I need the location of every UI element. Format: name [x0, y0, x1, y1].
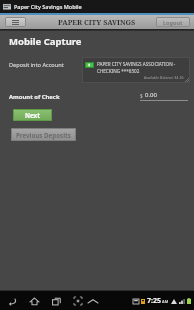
button[interactable]: PAPER CITY SAVINGS ASSOCIATION -	[82, 57, 190, 83]
button[interactable]: Next	[13, 109, 52, 121]
staticText: CHECKING ***6502	[97, 68, 140, 74]
staticText: Deposit into Account	[9, 61, 64, 69]
staticText: PAPER CITY SAVINGS	[58, 17, 136, 27]
staticText: 7:25	[147, 296, 161, 306]
button[interactable]: Previous Deposits	[11, 128, 76, 141]
staticText: Paper City Savings Mobile	[14, 3, 82, 10]
button[interactable]: Notifications	[88, 299, 98, 304]
staticText: AM	[162, 299, 169, 304]
staticText: Mobile Capture	[9, 35, 82, 48]
staticText: Amount of Check	[9, 93, 60, 101]
staticText: Previous Deposits	[16, 131, 71, 139]
staticText: Logout	[163, 19, 183, 26]
staticText: $	[140, 93, 143, 99]
button[interactable]: Logout	[156, 17, 190, 27]
button[interactable]: Recent apps	[50, 295, 62, 307]
button[interactable]: Back	[6, 295, 18, 307]
button[interactable]: Home	[28, 295, 40, 307]
staticText: Available Balance $4.26	[144, 75, 184, 80]
staticText: 0.00	[145, 91, 157, 99]
button[interactable]: Screenshot	[72, 295, 84, 307]
staticText: PAPER CITY SAVINGS ASSOCIATION -	[97, 61, 176, 67]
button[interactable]: Menu	[5, 17, 26, 27]
staticText: Next	[25, 111, 40, 119]
